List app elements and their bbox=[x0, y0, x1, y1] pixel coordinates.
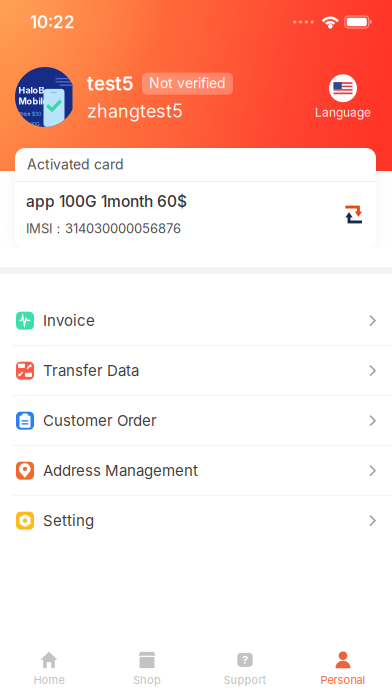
staticText: Shop bbox=[133, 673, 161, 687]
button[interactable]: Home bbox=[0, 640, 98, 695]
staticText: Address Management bbox=[43, 462, 198, 480]
staticText: Support bbox=[223, 673, 266, 687]
button[interactable]: Personal bbox=[294, 640, 392, 695]
staticText: Activated card bbox=[27, 156, 124, 173]
staticText: ? bbox=[242, 653, 248, 666]
staticText: Language bbox=[315, 105, 371, 120]
button[interactable]: Invoice bbox=[0, 296, 392, 345]
button[interactable]: Transfer Data bbox=[0, 346, 392, 395]
staticText: Setting bbox=[43, 512, 94, 530]
staticText: $30 bbox=[32, 111, 41, 117]
staticText: 10G bbox=[31, 121, 40, 127]
button[interactable]: Shop bbox=[98, 640, 196, 695]
staticText: Price bbox=[18, 111, 30, 117]
staticText: zhangtest5 bbox=[87, 100, 183, 122]
staticText: HaloB Mobile bbox=[18, 85, 47, 107]
staticText: Customer Order bbox=[43, 412, 157, 430]
staticText: IMSI：314030000056876 bbox=[26, 221, 181, 237]
staticText: Flow bbox=[18, 121, 29, 127]
button[interactable]: ? bbox=[196, 640, 294, 695]
staticText: test5 bbox=[87, 72, 134, 95]
button[interactable]: Language bbox=[311, 71, 375, 123]
staticText: app 100G 1month 60$ bbox=[26, 192, 187, 211]
button[interactable]: Address Management bbox=[0, 446, 392, 495]
button[interactable]: Setting bbox=[0, 496, 392, 545]
staticText: 10:22 bbox=[30, 12, 75, 32]
button[interactable]: Switch card bbox=[344, 204, 364, 224]
staticText: Invoice bbox=[43, 312, 95, 330]
button[interactable]: Customer Order bbox=[0, 396, 392, 445]
staticText: Not verified bbox=[149, 75, 226, 91]
staticText: Home bbox=[33, 673, 64, 687]
staticText: Transfer Data bbox=[43, 362, 139, 380]
staticText: Personal bbox=[320, 673, 365, 687]
